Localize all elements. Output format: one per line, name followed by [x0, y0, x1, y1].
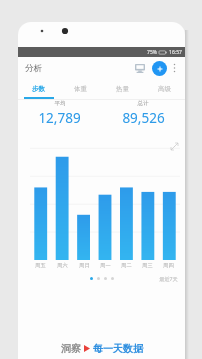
- button[interactable]: 平均: [18, 100, 101, 127]
- staticText: 周四: [163, 262, 174, 269]
- button[interactable]: 热量: [101, 79, 143, 99]
- staticText: 75%: [147, 49, 157, 56]
- button[interactable]: [97, 277, 100, 280]
- button[interactable]: 高级: [143, 79, 185, 99]
- staticText: 步数: [32, 85, 45, 93]
- staticText: 体重: [74, 85, 87, 93]
- staticText: 高级: [158, 85, 171, 93]
- staticText: 周三: [142, 262, 153, 269]
- staticText: 热量: [116, 85, 129, 93]
- button[interactable]: More options: [169, 59, 180, 77]
- button[interactable]: [104, 277, 107, 280]
- staticText: 周五: [35, 262, 46, 269]
- staticText: 每一天数据: [93, 342, 143, 355]
- staticText: 周六: [57, 262, 68, 269]
- button[interactable]: 步数: [18, 79, 59, 99]
- button[interactable]: Cast to screen: [132, 60, 148, 76]
- staticText: 周日: [79, 262, 90, 269]
- button[interactable]: [111, 277, 114, 280]
- staticText: 分析: [25, 63, 42, 74]
- staticText: 16:57: [169, 49, 182, 56]
- button[interactable]: 体重: [59, 79, 101, 99]
- button[interactable]: [90, 277, 93, 280]
- staticText: 洞察: [61, 342, 81, 355]
- button[interactable]: Add: [152, 61, 167, 76]
- staticText: 最近7天: [159, 275, 178, 282]
- staticText: 周二: [121, 262, 132, 269]
- staticText: 12,789: [38, 109, 81, 127]
- staticText: 89,526: [122, 109, 165, 127]
- staticText: 平均: [54, 100, 66, 107]
- button[interactable]: 总计: [101, 100, 185, 127]
- staticText: 总计: [137, 100, 149, 107]
- button[interactable]: 最近7天: [159, 275, 178, 282]
- staticText: 周一: [100, 262, 111, 269]
- button[interactable]: Expand chart: [168, 140, 180, 152]
